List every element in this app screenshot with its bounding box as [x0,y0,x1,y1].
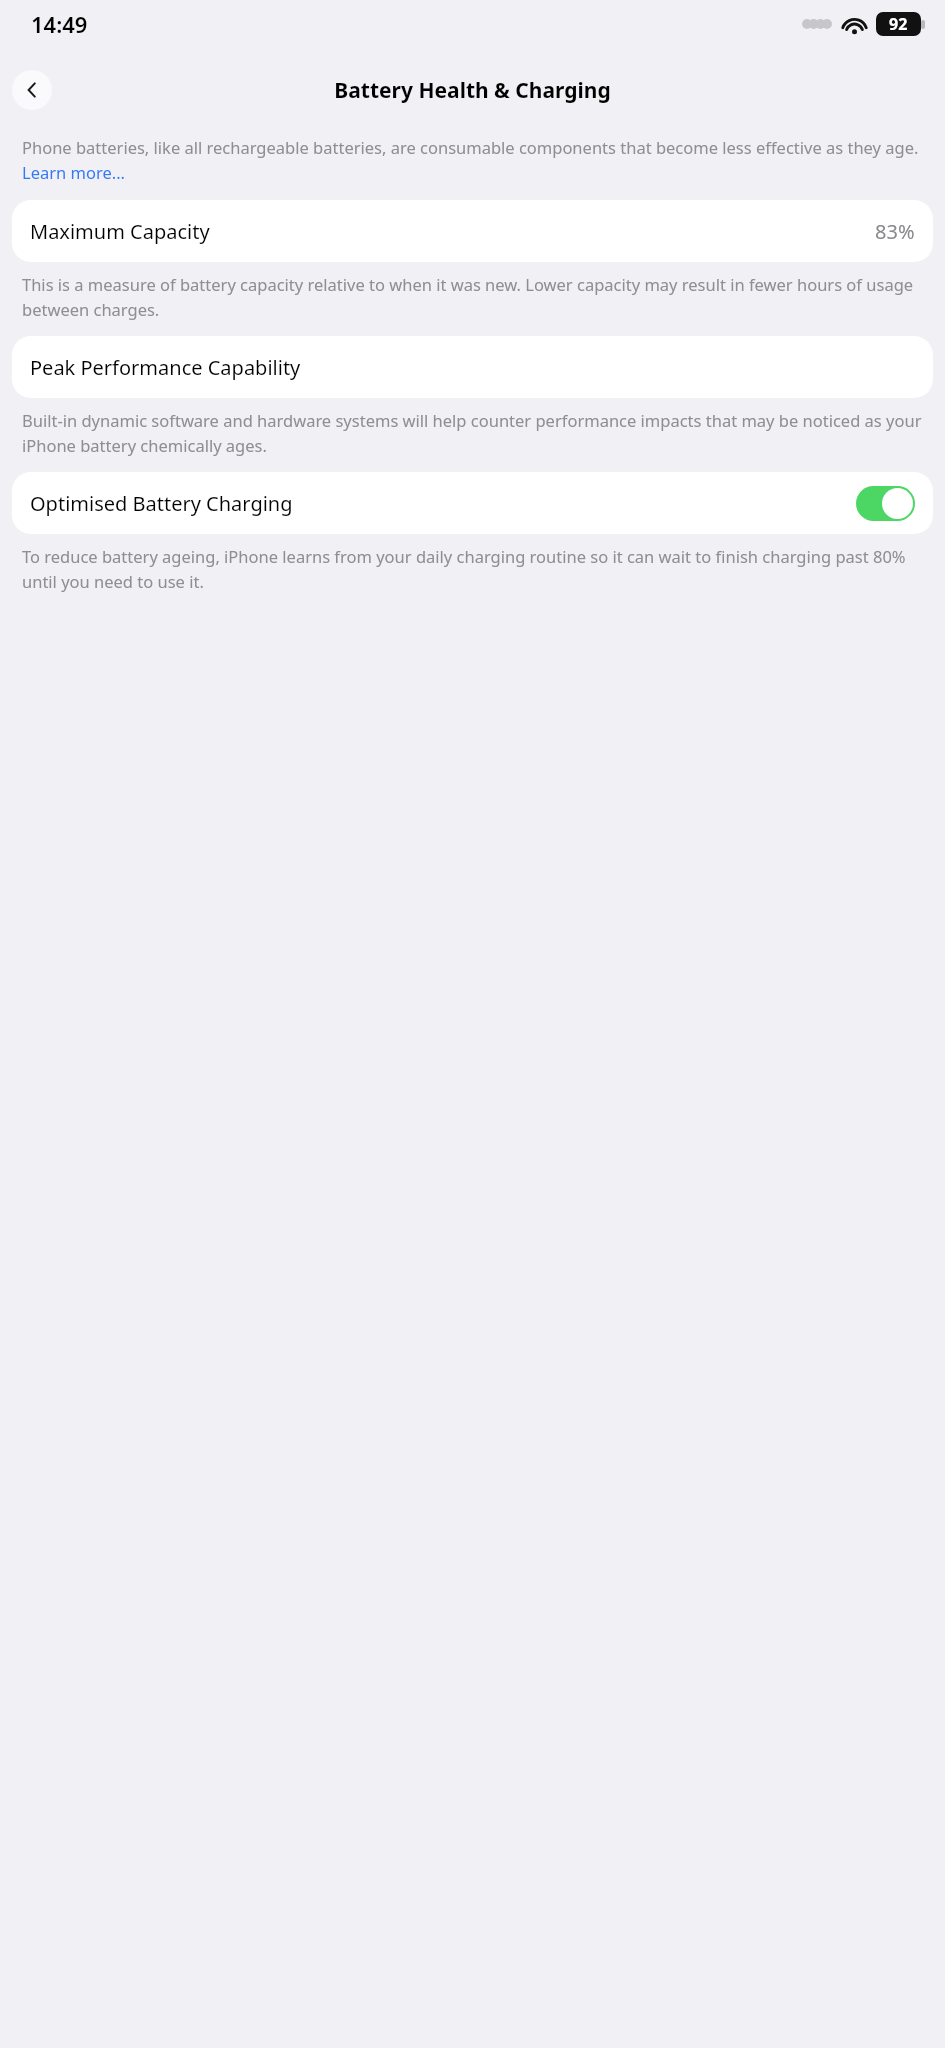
staticText: To reduce battery ageing, iPhone learns … [22,545,923,592]
button[interactable]: Back [12,70,52,110]
staticText: Maximum Capacity [30,218,210,245]
button[interactable]: Optimised Battery Charging toggle, on [856,486,915,521]
button[interactable]: Optimised Battery Charging [12,472,933,534]
staticText: Peak Performance Capability [30,354,301,381]
staticText: This is a measure of battery capacity re… [22,273,923,320]
staticText: Battery Health & Charging [334,76,611,105]
staticText: Optimised Battery Charging [30,490,293,517]
staticText: 83% [875,218,915,245]
button[interactable]: Peak Performance Capability [12,336,933,398]
staticText: 92 [889,13,908,35]
staticText: 14:49 [31,9,88,39]
button[interactable]: Maximum Capacity [12,200,933,262]
staticText: Phone batteries, like all rechargeable b… [22,136,923,183]
staticText: Built-in dynamic software and hardware s… [22,409,923,456]
